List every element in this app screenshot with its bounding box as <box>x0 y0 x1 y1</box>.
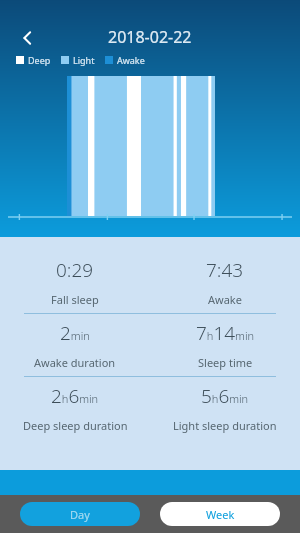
staticText: 0:29 <box>56 257 94 283</box>
staticText: Awake duration <box>34 355 116 370</box>
button[interactable]: 7h14min <box>150 314 300 376</box>
button[interactable]: 7:43 <box>150 251 300 313</box>
staticText: 2018-02-22 <box>108 26 192 48</box>
button[interactable]: 0:29 <box>0 251 150 313</box>
staticText: Week <box>206 507 235 522</box>
staticText: Awake <box>117 54 145 66</box>
staticText: Light <box>73 54 95 66</box>
button[interactable]: Back <box>14 24 42 52</box>
staticText: 5h6min <box>201 383 249 409</box>
staticText: Day <box>70 507 90 522</box>
staticText: Sleep time <box>198 355 253 370</box>
button[interactable]: Day <box>20 502 140 526</box>
staticText: Awake <box>208 292 242 307</box>
staticText: 7:43 <box>206 257 244 283</box>
staticText: 7h14min <box>196 320 255 346</box>
staticText: 2h6min <box>51 383 99 409</box>
staticText: Deep <box>28 54 51 66</box>
staticText: Light sleep duration <box>173 418 277 433</box>
button[interactable]: Week <box>160 502 280 526</box>
staticText: Deep sleep duration <box>23 418 128 433</box>
button[interactable]: 5h6min <box>150 377 300 439</box>
staticText: Fall sleep <box>51 292 99 307</box>
button[interactable]: 2h6min <box>0 377 150 439</box>
button[interactable]: 2min <box>0 314 150 376</box>
staticText: 2min <box>60 320 90 346</box>
